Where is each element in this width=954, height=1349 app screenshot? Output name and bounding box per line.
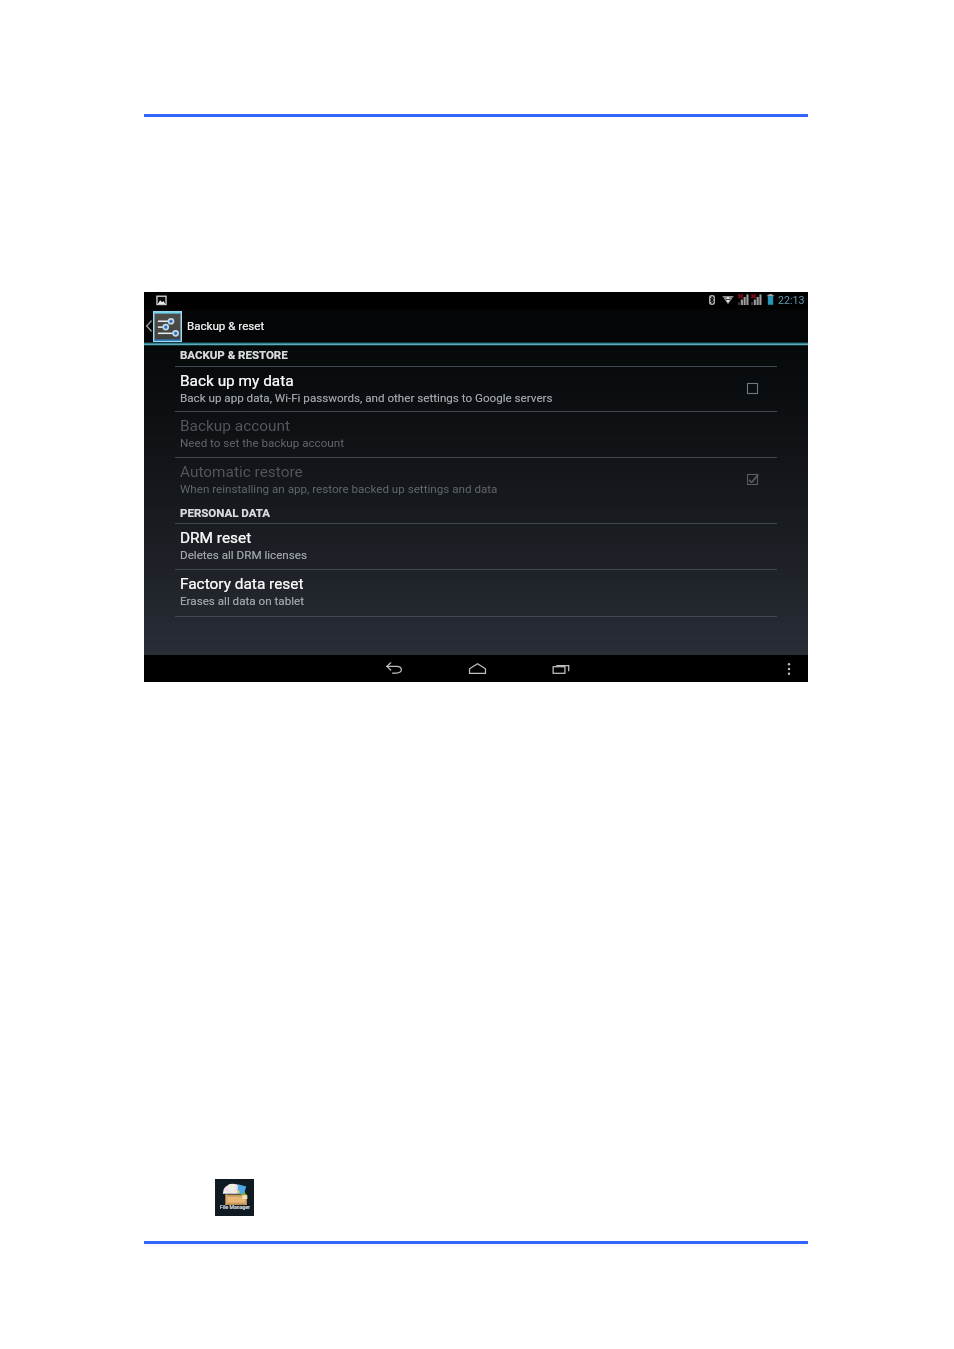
- staticText: Backup & reset: [187, 319, 265, 333]
- staticText: Backup account: [180, 417, 291, 435]
- staticText: 22:13: [778, 294, 805, 306]
- button[interactable]: Back up my data: [144, 367, 808, 411]
- staticText: Back up my data: [180, 372, 294, 390]
- button[interactable]: Factory data reset: [144, 570, 808, 614]
- button[interactable]: Recent apps: [544, 657, 578, 680]
- button[interactable]: Not checked: [747, 383, 758, 394]
- button[interactable]: DRM reset: [144, 524, 808, 568]
- button[interactable]: File Manager: [215, 1179, 254, 1216]
- staticText: DRM reset: [180, 529, 252, 547]
- button[interactable]: Automatic restore: [144, 458, 808, 502]
- button[interactable]: Navigate up: [144, 309, 184, 343]
- button[interactable]: Backup account: [144, 412, 808, 456]
- staticText: Deletes all DRM licenses: [180, 548, 307, 562]
- staticText: Back up app data, Wi-Fi passwords, and o…: [180, 391, 553, 405]
- button[interactable]: Checked: [747, 474, 758, 485]
- button[interactable]: Home: [460, 657, 494, 680]
- staticText: BACKUP & RESTORE: [180, 348, 288, 361]
- staticText: Erases all data on tablet: [180, 594, 304, 608]
- button[interactable]: More options: [778, 657, 800, 680]
- staticText: Factory data reset: [180, 575, 304, 593]
- button[interactable]: Back: [377, 657, 411, 680]
- staticText: Automatic restore: [180, 463, 303, 481]
- staticText: When reinstalling an app, restore backed…: [180, 482, 498, 496]
- staticText: File Manager: [220, 1204, 250, 1210]
- staticText: PERSONAL DATA: [180, 506, 270, 519]
- staticText: Need to set the backup account: [180, 436, 344, 450]
